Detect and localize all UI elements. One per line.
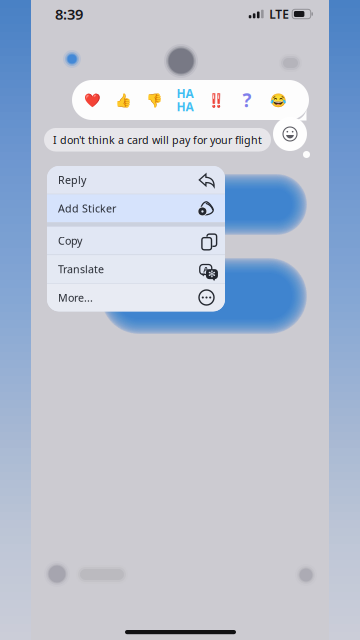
staticText: ?: [242, 88, 251, 112]
staticText: Translate: [58, 262, 104, 276]
staticText: 👍: [114, 92, 131, 108]
staticText: 😂: [269, 92, 286, 108]
button[interactable]: Add emoji reaction: [273, 117, 307, 151]
button[interactable]: Copy: [47, 227, 225, 255]
button[interactable]: Reply: [47, 166, 225, 194]
staticText: 8:39: [55, 4, 83, 24]
staticText: ✻: [208, 269, 216, 279]
staticText: Copy: [58, 234, 82, 248]
button[interactable]: Translate: [47, 255, 225, 283]
button[interactable]: Question: [232, 81, 262, 119]
button[interactable]: More emoji: [263, 81, 293, 119]
staticText: HA: [176, 99, 193, 115]
staticText: Reply: [58, 173, 86, 187]
staticText: I don't think a card will pay for your f…: [53, 133, 262, 147]
staticText: HA: [176, 85, 193, 101]
staticText: Add Sticker: [58, 201, 116, 215]
button[interactable]: Haha: [170, 81, 200, 119]
button[interactable]: Love: [77, 81, 107, 119]
button[interactable]: More...: [47, 284, 225, 311]
button[interactable]: Thumbs down: [139, 81, 169, 119]
staticText: 👎: [145, 92, 162, 108]
button[interactable]: Add Sticker: [47, 194, 225, 222]
staticText: More...: [58, 290, 93, 305]
staticText: ❤️: [83, 92, 100, 108]
button[interactable]: Thumbs up: [108, 81, 138, 119]
staticText: LTE: [269, 6, 289, 22]
button[interactable]: Exclamation: [201, 81, 231, 119]
staticText: ‼️: [207, 92, 224, 108]
staticText: A: [203, 264, 208, 275]
